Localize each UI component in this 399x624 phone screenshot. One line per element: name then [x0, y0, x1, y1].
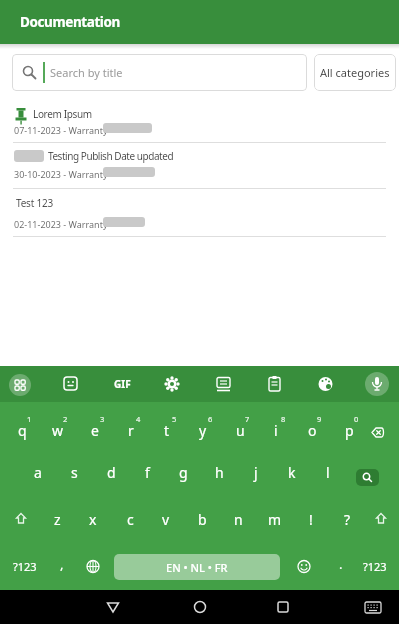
button[interactable]: g — [165, 449, 201, 496]
staticText: 7 — [245, 414, 250, 424]
button[interactable]: All categories — [314, 54, 396, 91]
button[interactable] — [365, 372, 389, 396]
button[interactable]: z — [39, 496, 75, 543]
staticText: ?123 — [363, 559, 387, 574]
button[interactable]: ?123 — [5, 543, 45, 590]
staticText: 1 — [27, 414, 32, 424]
button[interactable]: m — [257, 496, 293, 543]
button[interactable] — [183, 590, 217, 624]
button[interactable]: Search by title — [12, 54, 307, 91]
staticText: g — [179, 463, 188, 482]
staticText: , — [60, 555, 64, 573]
button[interactable]: v — [148, 496, 184, 543]
button[interactable]: Lorem Ipsum — [0, 101, 399, 142]
staticText: GIF — [114, 377, 131, 391]
button[interactable]: ?123 — [355, 543, 395, 590]
button[interactable]: u — [222, 411, 258, 450]
button[interactable] — [80, 543, 106, 590]
staticText: 2 — [63, 414, 68, 424]
staticText: a — [34, 463, 42, 482]
staticText: r — [128, 421, 134, 440]
button[interactable] — [356, 590, 390, 624]
button[interactable]: EN • NL • FR — [114, 554, 280, 580]
button[interactable]: GIF — [106, 371, 138, 397]
button[interactable] — [262, 371, 288, 397]
staticText: EN • NL • FR — [166, 560, 228, 575]
button[interactable]: h — [201, 449, 237, 496]
button[interactable]: l — [310, 449, 346, 496]
button[interactable]: t — [149, 411, 185, 450]
button[interactable] — [356, 469, 379, 486]
button[interactable] — [3, 496, 39, 543]
staticText: k — [288, 463, 296, 482]
staticText: l — [326, 463, 330, 482]
staticText: Search by title — [50, 65, 123, 80]
button[interactable]: k — [274, 449, 310, 496]
button[interactable] — [159, 371, 185, 397]
staticText: c — [127, 510, 134, 529]
button[interactable]: ! — [293, 496, 329, 543]
button[interactable]: a — [20, 449, 56, 496]
staticText: Testing Publish Date updated — [48, 149, 174, 163]
button[interactable] — [96, 590, 130, 624]
button[interactable]: y — [185, 411, 221, 450]
button[interactable]: , — [47, 540, 77, 587]
staticText: ? — [344, 510, 351, 529]
button[interactable]: ? — [329, 496, 365, 543]
staticText: w — [52, 421, 64, 440]
staticText: 5 — [172, 414, 177, 424]
button[interactable]: s — [56, 449, 92, 496]
button[interactable]: e — [77, 411, 113, 450]
button[interactable] — [266, 590, 300, 624]
button[interactable]: o — [294, 411, 330, 450]
button[interactable]: j — [238, 449, 274, 496]
staticText: 02-11-2023 - Warranty - — [14, 218, 113, 230]
button[interactable]: p — [331, 411, 367, 450]
staticText: Lorem Ipsum — [33, 107, 92, 121]
button[interactable]: r — [113, 411, 149, 450]
button[interactable] — [363, 496, 399, 543]
button[interactable]: Test 123 — [0, 189, 399, 235]
button[interactable] — [9, 374, 31, 396]
button[interactable] — [360, 412, 396, 452]
staticText: . — [339, 555, 343, 573]
staticText: o — [308, 421, 317, 440]
button[interactable]: f — [129, 449, 165, 496]
staticText: s — [71, 463, 78, 482]
staticText: y — [199, 421, 207, 440]
staticText: f — [145, 463, 150, 482]
button[interactable]: w — [40, 411, 76, 450]
button[interactable]: Testing Publish Date updated — [0, 143, 399, 188]
staticText: 30-10-2023 - Warranty - — [14, 168, 113, 180]
staticText: All categories — [320, 65, 390, 80]
button[interactable]: b — [184, 496, 220, 543]
button[interactable]: q — [4, 411, 40, 450]
button[interactable] — [313, 371, 339, 397]
button[interactable]: n — [220, 496, 256, 543]
button[interactable] — [58, 371, 84, 397]
staticText: d — [107, 463, 116, 482]
staticText: u — [236, 421, 245, 440]
staticText: 6 — [208, 414, 213, 424]
staticText: t — [164, 421, 170, 440]
staticText: p — [345, 421, 354, 440]
staticText: x — [89, 510, 97, 529]
button[interactable]: c — [112, 496, 148, 543]
button[interactable]: x — [75, 496, 111, 543]
button[interactable] — [211, 371, 237, 397]
staticText: v — [162, 510, 170, 529]
staticText: n — [234, 510, 243, 529]
staticText: ! — [309, 510, 313, 529]
button[interactable]: d — [93, 449, 129, 496]
staticText: h — [215, 463, 224, 482]
button[interactable]: i — [258, 411, 294, 450]
staticText: Test 123 — [16, 196, 54, 210]
staticText: 3 — [100, 414, 105, 424]
button[interactable]: . — [327, 540, 355, 587]
staticText: j — [254, 463, 258, 482]
staticText: 9 — [317, 414, 322, 424]
button[interactable] — [291, 543, 317, 590]
staticText: Documentation — [20, 13, 120, 31]
staticText: z — [54, 510, 61, 529]
staticText: q — [18, 421, 27, 440]
